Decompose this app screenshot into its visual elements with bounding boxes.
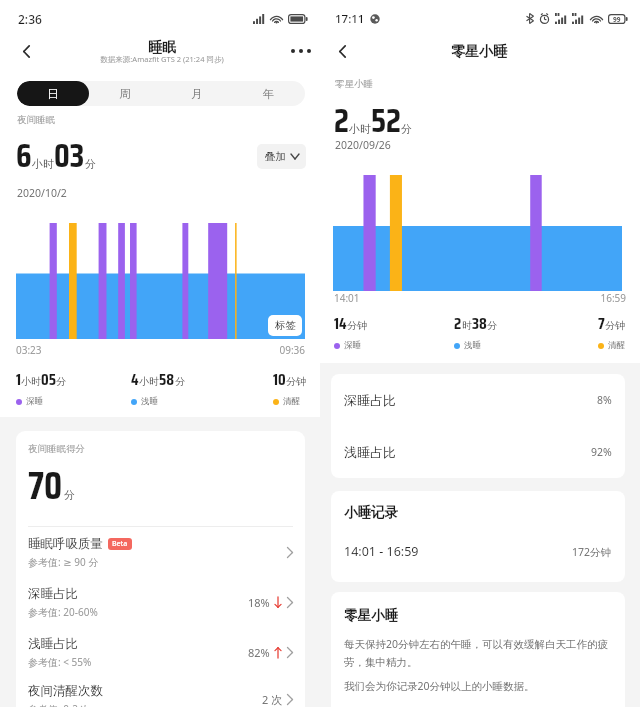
button[interactable]: Back xyxy=(8,33,44,69)
staticText: 周 xyxy=(119,87,131,101)
staticText: 小时 xyxy=(32,157,54,171)
staticText: 03:23 xyxy=(16,343,42,357)
button[interactable]: 夜间清醒次数 xyxy=(16,677,305,707)
staticText: 17:11 xyxy=(335,11,365,27)
staticText: 2020/10/2 xyxy=(17,186,67,200)
staticText: 14:01 xyxy=(334,291,360,305)
staticText: 分 xyxy=(175,375,185,388)
staticText: 分钟 xyxy=(605,319,625,332)
staticText: 清醒 xyxy=(283,396,300,407)
staticText: 我们会为你记录20分钟以上的小睡数据。 xyxy=(344,679,535,693)
staticText: 深睡 xyxy=(26,396,43,407)
staticText: 时 xyxy=(462,319,472,332)
button[interactable]: 深睡占比 xyxy=(331,374,625,426)
staticText: 小时 xyxy=(21,375,41,388)
staticText: 浅睡 xyxy=(464,340,481,351)
staticText: 分 xyxy=(85,157,96,171)
button[interactable]: 月 xyxy=(161,81,233,106)
staticText: 小睡记录 xyxy=(344,504,398,521)
staticText: 03 xyxy=(54,130,85,182)
staticText: 分 xyxy=(64,488,75,502)
staticText: 8% xyxy=(597,393,612,407)
button[interactable]: 标签 xyxy=(268,315,302,336)
staticText: 年 xyxy=(263,87,275,101)
staticText: 零星小睡 xyxy=(319,43,639,61)
staticText: 分钟 xyxy=(286,375,306,388)
staticText: 09:36 xyxy=(0,343,305,357)
staticText: 分 xyxy=(487,319,497,332)
staticText: 夜间睡眠得分 xyxy=(28,443,85,455)
button[interactable]: 浅睡占比 xyxy=(331,426,625,478)
staticText: 小时 xyxy=(139,375,159,388)
staticText: 分 xyxy=(56,375,66,388)
button[interactable]: 日 xyxy=(17,81,89,106)
staticText: 14:01 - 16:59 xyxy=(344,543,419,560)
staticText: 深睡 xyxy=(344,340,361,351)
staticText: 2020/09/26 xyxy=(335,138,391,152)
staticText: 172分钟 xyxy=(572,545,612,559)
staticText: 92% xyxy=(591,445,612,459)
staticText: 深睡占比 xyxy=(344,392,396,408)
staticText: 分钟 xyxy=(347,319,367,332)
staticText: 14 xyxy=(334,311,347,336)
staticText: 月 xyxy=(191,87,203,101)
staticText: 标签 xyxy=(275,319,296,332)
button[interactable]: 年 xyxy=(233,81,305,106)
staticText: 浅睡 xyxy=(141,396,158,407)
button[interactable]: 深睡占比 xyxy=(16,577,305,627)
staticText: 日 xyxy=(47,87,59,101)
staticText: 7 xyxy=(598,311,605,336)
staticText: 零星小睡 xyxy=(335,78,373,90)
staticText: Beta xyxy=(112,539,128,549)
staticText: 2 次 xyxy=(262,692,283,707)
staticText: 2 xyxy=(454,311,462,336)
staticText: 夜间清醒次数 xyxy=(28,683,103,699)
staticText: 05 xyxy=(41,367,56,392)
staticText: 零星小睡 xyxy=(344,607,398,624)
staticText: 数据来源:Amazfit GTS 2 (21:24 同步) xyxy=(2,54,322,64)
button[interactable]: 睡眠呼吸质量 xyxy=(16,527,305,577)
button[interactable]: More options xyxy=(283,33,319,69)
staticText: 深睡占比 xyxy=(28,586,78,602)
staticText: 浅睡占比 xyxy=(28,636,78,652)
button[interactable]: 周 xyxy=(89,81,161,106)
staticText: 1 xyxy=(16,367,21,392)
staticText: 浅睡占比 xyxy=(344,444,396,460)
staticText: 睡眠呼吸质量 xyxy=(28,536,103,552)
staticText: 清醒 xyxy=(608,340,625,351)
staticText: 参考值: ≥ 90 分 xyxy=(28,555,99,569)
staticText: 6 xyxy=(16,130,32,182)
staticText: 99 xyxy=(613,15,621,24)
staticText: 4 xyxy=(131,367,139,392)
staticText: 2:36 xyxy=(18,11,42,27)
staticText: 参考值: < 55% xyxy=(28,655,92,669)
staticText: 小时 xyxy=(349,122,371,136)
button[interactable]: Back xyxy=(324,33,360,69)
staticText: 每天保持20分钟左右的午睡，可以有效缓解白天工作的疲劳，集中精力。 xyxy=(344,637,612,669)
staticText: 参考值: 20-60% xyxy=(28,605,98,619)
staticText: 16:59 xyxy=(320,291,626,305)
staticText: 2 xyxy=(334,95,349,147)
staticText: 夜间睡眠 xyxy=(17,114,55,126)
staticText: 参考值: 0-2 次 xyxy=(28,702,91,707)
staticText: 分 xyxy=(401,122,412,136)
staticText: 睡眠 xyxy=(2,39,322,57)
staticText: 38 xyxy=(472,311,487,336)
staticText: 52 xyxy=(371,95,401,147)
staticText: 70 xyxy=(28,456,63,516)
staticText: 10 xyxy=(273,367,286,392)
button[interactable]: 浅睡占比 xyxy=(16,627,305,677)
button[interactable]: 叠加 xyxy=(257,144,306,169)
staticText: 叠加 xyxy=(265,150,286,163)
staticText: 58 xyxy=(159,367,175,392)
staticText: 18% xyxy=(248,595,270,610)
staticText: 82% xyxy=(248,645,270,660)
